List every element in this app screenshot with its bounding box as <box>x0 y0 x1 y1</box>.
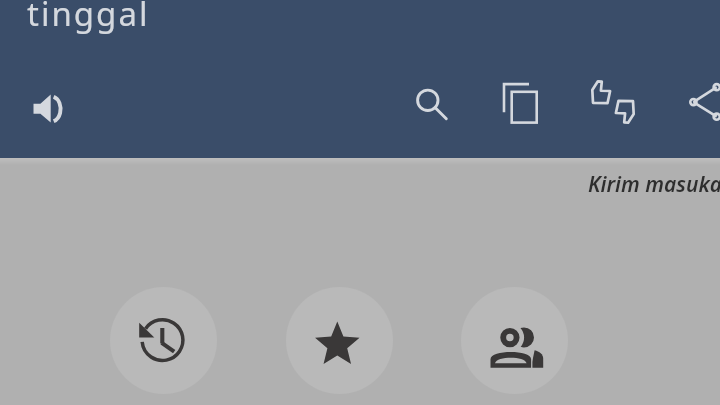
button[interactable]: Listen <box>21 81 77 137</box>
staticText: tinggal <box>27 0 150 36</box>
button[interactable]: Saved <box>286 287 393 394</box>
button[interactable]: Community <box>461 287 568 394</box>
button[interactable]: History <box>110 287 217 394</box>
button[interactable]: Share <box>677 74 720 130</box>
button[interactable]: Search <box>403 76 459 132</box>
staticText: Kirim masukan <box>588 170 720 199</box>
button[interactable]: Rate this translation <box>585 74 641 130</box>
button[interactable]: Copy <box>493 76 549 132</box>
